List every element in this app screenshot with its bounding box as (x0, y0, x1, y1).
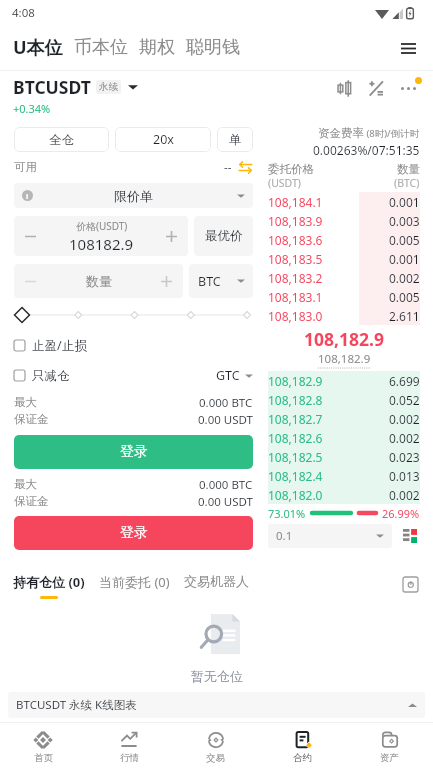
staticText: 单 (229, 132, 242, 148)
staticText: 4:08 (12, 5, 35, 21)
button[interactable]: More (392, 72, 424, 104)
button[interactable]: BTC (189, 264, 253, 298)
staticText: (USDT) (268, 176, 301, 190)
button[interactable]: 最优价 (194, 216, 253, 256)
button[interactable]: 当前委托 (0) (99, 573, 170, 591)
staticText: 止盈/止损 (32, 337, 87, 354)
staticText: 0.1 (276, 528, 293, 544)
staticText: 73.01% (268, 506, 306, 521)
staticText: 108,184.1 (268, 194, 323, 210)
staticText: 暂无仓位 (191, 668, 243, 684)
button[interactable]: 单 (217, 127, 253, 152)
staticText: 0.052 (389, 392, 420, 408)
button[interactable]: 交易 (172, 723, 259, 771)
staticText: 持有仓位 (0) (13, 573, 85, 591)
staticText: BTCUSDT 永续 K线图表 (16, 697, 137, 713)
button[interactable]: 期权 (139, 36, 175, 59)
button[interactable]: 资产 (346, 723, 433, 771)
button[interactable]: Chart (328, 72, 360, 104)
staticText: 0.002 (389, 270, 420, 286)
button[interactable]: 0.1 (268, 524, 392, 548)
staticText: 108,182.7 (268, 411, 323, 427)
button[interactable]: U本位 (13, 35, 63, 60)
button[interactable]: Calculator (360, 72, 392, 104)
staticText: 0.005 (389, 289, 420, 305)
button[interactable]: 20x (115, 127, 211, 152)
staticText: i (26, 191, 29, 201)
staticText: +0.34% (13, 101, 51, 116)
staticText: 首页 (34, 752, 53, 764)
staticText: 可用 (14, 160, 37, 174)
staticText: 交易 (206, 752, 225, 764)
staticText: 108,182.6 (268, 430, 323, 446)
staticText: 26.99% (382, 506, 420, 521)
staticText: 全仓 (49, 132, 74, 148)
staticText: 委托价格 (268, 162, 314, 176)
button[interactable]: 持有仓位 (0) (13, 573, 85, 599)
button[interactable]: 币本位 (74, 36, 128, 59)
button[interactable]: 登录 (14, 435, 253, 469)
staticText: GTC (216, 367, 240, 384)
button[interactable]: 全仓 (14, 127, 109, 152)
button[interactable]: BTCUSDT 永续 K线图表 (8, 692, 425, 718)
button[interactable]: 登录 (14, 516, 253, 550)
staticText: 0.00 USDT (198, 494, 253, 510)
staticText: 108,183.1 (268, 289, 323, 305)
staticText: 价格(USDT) (76, 219, 128, 233)
staticText: 108,182.5 (268, 449, 323, 465)
button[interactable]: 止盈/止损 (14, 337, 253, 354)
staticText: 合约 (293, 752, 312, 764)
button[interactable]: 交易机器人 (184, 573, 249, 589)
staticText: 0.023 (389, 449, 420, 465)
staticText: 限价单 (114, 188, 153, 204)
staticText: 登录 (120, 524, 148, 542)
staticText: 0.003 (389, 213, 420, 229)
staticText: 0.000 BTC (199, 477, 253, 493)
staticText: 108,183.5 (268, 251, 323, 267)
staticText: 0.00263%/07:51:35 (313, 142, 420, 158)
staticText: 108,183.2 (268, 270, 323, 286)
staticText: 0.001 (389, 194, 420, 210)
button[interactable]: History (399, 573, 421, 595)
staticText: 最大 (14, 477, 37, 491)
button[interactable]: i (14, 183, 253, 208)
staticText: 0.002 (389, 430, 420, 446)
staticText: 6.699 (389, 373, 420, 389)
button[interactable]: 数量 (14, 264, 183, 298)
staticText: 保证金 (14, 412, 49, 426)
staticText: 108182.9 (69, 234, 134, 254)
staticText: 最大 (14, 395, 37, 409)
staticText: 108,182.9 (318, 351, 371, 367)
staticText: 资产 (380, 752, 399, 764)
button[interactable]: 合约 (259, 723, 346, 771)
button[interactable]: 只减仓 (14, 367, 253, 384)
staticText: 最优价 (205, 228, 243, 244)
staticText: 108,182.9 (268, 327, 420, 351)
staticText: (BTC) (394, 176, 420, 190)
staticText: 资金费率 (318, 126, 364, 140)
staticText: 行情 (120, 752, 139, 764)
staticText: 108,183.6 (268, 232, 323, 248)
staticText: 108,182.9 (268, 373, 323, 389)
staticText: 永续 (99, 81, 118, 93)
button[interactable]: BTCUSDT (13, 75, 91, 99)
staticText: 保证金 (14, 494, 49, 508)
staticText: 108,182.8 (268, 392, 323, 408)
staticText: 只减仓 (32, 368, 70, 384)
button[interactable]: Depth view (400, 526, 420, 546)
button[interactable]: 价格(USDT) (14, 216, 188, 256)
staticText: 108,183.0 (268, 308, 323, 324)
button[interactable]: 聪明钱 (186, 36, 240, 59)
button[interactable]: Menu (393, 33, 423, 63)
staticText: 数量 (86, 273, 112, 289)
staticText: 数量 (397, 162, 420, 176)
button[interactable]: 行情 (86, 723, 172, 771)
staticText: 20x (153, 131, 174, 148)
staticText: (8时)/倒计时 (364, 127, 420, 140)
staticText: 108,183.9 (268, 213, 323, 229)
staticText: 2.611 (389, 308, 420, 324)
staticText: 108,182.4 (268, 468, 323, 484)
staticText: BTC (198, 273, 221, 290)
button[interactable]: 首页 (0, 723, 86, 771)
staticText: 登录 (120, 443, 148, 461)
